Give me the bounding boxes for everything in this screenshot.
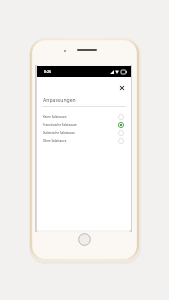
staticText: Anpassungen <box>43 97 76 104</box>
staticText: Ohne Salatsauce <box>43 139 67 143</box>
button[interactable]: Keine Salatsauce <box>37 113 131 121</box>
button[interactable]: Italienische Salatsauce <box>37 129 131 137</box>
button[interactable]: Ohne Salatsauce <box>37 137 131 145</box>
staticText: 8:26 <box>44 69 52 74</box>
button[interactable]: Home <box>78 233 91 246</box>
staticText: Französische Salatsauce <box>43 123 77 127</box>
staticText: Italienische Salatsauce <box>43 131 75 135</box>
button[interactable]: Französische Salatsauce <box>37 121 131 129</box>
staticText: Keine Salatsauce <box>43 115 67 119</box>
button[interactable]: Schliessen <box>117 83 126 92</box>
